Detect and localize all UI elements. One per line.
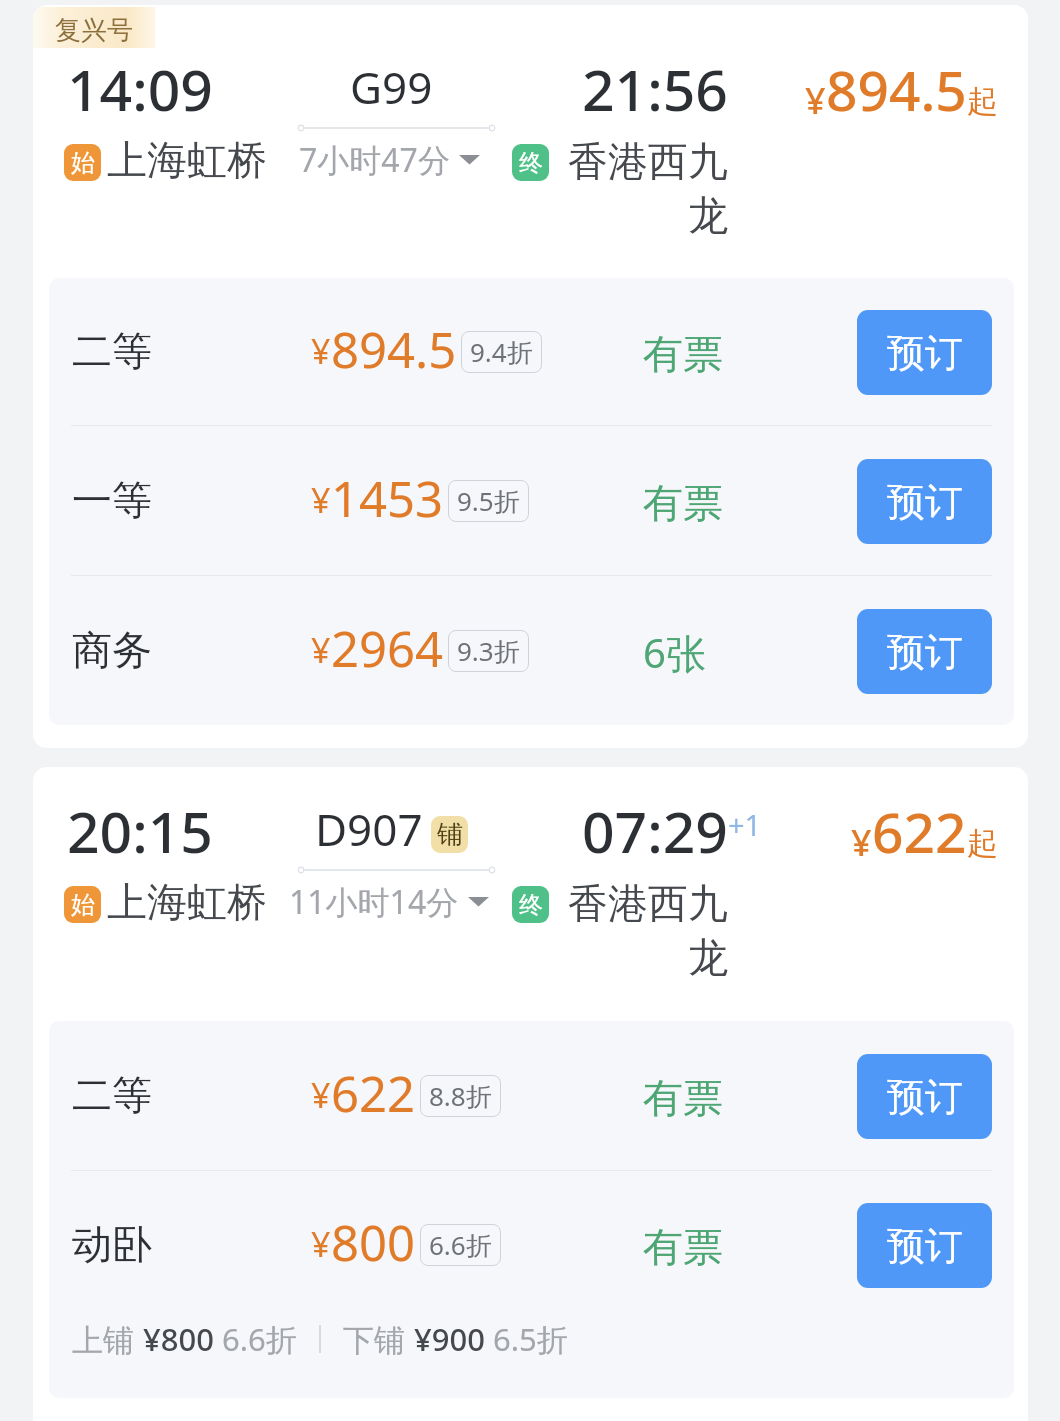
staticText: 预订	[887, 1073, 963, 1121]
staticText: 终	[519, 890, 543, 920]
button[interactable]: 一等	[49, 426, 1014, 575]
staticText: 894.5	[331, 316, 457, 383]
staticText: 有票	[643, 329, 723, 379]
staticText: 800	[331, 1209, 416, 1276]
staticText: D907	[315, 799, 423, 859]
staticText: ¥	[805, 76, 826, 125]
staticText: ¥	[311, 328, 331, 374]
staticText: ¥	[311, 627, 331, 673]
button[interactable]: 预订	[857, 609, 992, 694]
staticText: 香港西九龙	[556, 136, 728, 241]
staticText: 二等	[72, 326, 152, 376]
staticText: 起	[967, 82, 998, 121]
button[interactable]: 动卧	[49, 1171, 1014, 1318]
staticText: +1	[728, 805, 762, 844]
staticText: 终	[519, 148, 543, 178]
staticText: 9.4折	[470, 334, 533, 370]
staticText: 预订	[887, 329, 963, 377]
staticText: 一等	[72, 475, 152, 525]
staticText: 上海虹桥	[107, 877, 267, 927]
staticText: 2964	[331, 615, 444, 682]
staticText: 14:09	[67, 50, 213, 128]
staticText: 二等	[72, 1070, 152, 1120]
button[interactable]: Show trip details	[289, 880, 489, 924]
staticText: 有票	[643, 478, 723, 528]
staticText: 预订	[887, 628, 963, 676]
button[interactable]: 预订	[857, 1203, 992, 1288]
staticText: 6.6折	[429, 1227, 492, 1263]
staticText: 上海虹桥	[107, 135, 267, 185]
staticText: G99	[350, 57, 433, 117]
staticText: 8.8折	[429, 1078, 492, 1114]
staticText: 21:56	[582, 50, 728, 128]
button[interactable]: 预订	[857, 1054, 992, 1139]
staticText: 下铺	[343, 1318, 414, 1360]
button[interactable]: 二等	[49, 1021, 1014, 1170]
button[interactable]: 预订	[857, 459, 992, 544]
staticText: 始	[71, 148, 95, 178]
staticText: 6.5折	[485, 1318, 568, 1360]
staticText: 始	[71, 890, 95, 920]
staticText: 11小时14分	[289, 880, 459, 924]
staticText: 有票	[643, 1073, 723, 1123]
staticText: 1453	[331, 465, 444, 532]
staticText: 622	[331, 1060, 416, 1127]
button[interactable]: 二等	[49, 278, 1014, 425]
staticText: 9.5折	[457, 483, 520, 519]
staticText: 07:29	[582, 792, 728, 870]
staticText: 894.5	[826, 52, 967, 127]
staticText: 上铺	[72, 1318, 143, 1360]
button[interactable]: 20:15	[33, 767, 1028, 1421]
staticText: 香港西九龙	[556, 878, 728, 983]
staticText: 铺	[437, 818, 463, 851]
staticText: ¥	[311, 1072, 331, 1118]
staticText: 预订	[887, 1222, 963, 1270]
staticText: 商务	[72, 625, 152, 675]
button[interactable]: 商务	[49, 576, 1014, 725]
staticText: 预订	[887, 478, 963, 526]
staticText: 有票	[643, 1222, 723, 1272]
button[interactable]: Show trip details	[299, 138, 480, 182]
staticText: 复兴号	[55, 14, 133, 47]
staticText: ¥	[311, 1221, 331, 1267]
staticText: ¥	[311, 477, 331, 523]
staticText: 6.6折	[214, 1318, 297, 1360]
staticText: 6张	[643, 625, 706, 680]
staticText: 20:15	[67, 792, 213, 870]
staticText: ¥900	[414, 1318, 485, 1360]
button[interactable]: 预订	[857, 310, 992, 395]
staticText: 7小时47分	[299, 138, 450, 182]
staticText: 动卧	[72, 1219, 152, 1269]
staticText: 9.3折	[457, 633, 520, 669]
staticText: ¥800	[143, 1318, 214, 1360]
staticText: 622	[872, 794, 967, 869]
staticText: 起	[967, 824, 998, 863]
button[interactable]: 复兴号	[33, 5, 1028, 748]
staticText: ¥	[851, 818, 872, 867]
